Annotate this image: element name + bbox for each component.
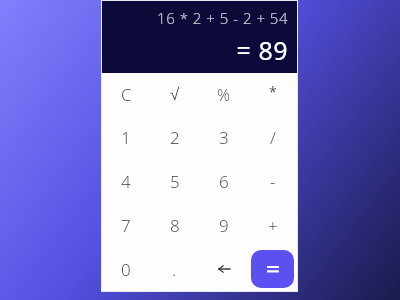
- button[interactable]: 5: [150, 159, 199, 203]
- staticText: /: [270, 126, 276, 149]
- staticText: √: [170, 85, 180, 104]
- staticText: 2: [170, 126, 180, 149]
- button[interactable]: 8: [150, 203, 199, 247]
- button[interactable]: √: [150, 73, 199, 116]
- staticText: .: [172, 258, 177, 281]
- button[interactable]: Equals: [251, 250, 294, 288]
- staticText: *: [269, 82, 277, 101]
- staticText: 8: [170, 214, 180, 237]
- staticText: 16 * 2 + 5 - 2 + 54: [111, 8, 288, 28]
- button[interactable]: 7: [102, 203, 150, 247]
- button[interactable]: /: [248, 116, 297, 159]
- button[interactable]: 9: [199, 203, 248, 247]
- staticText: 6: [219, 170, 229, 193]
- staticText: 5: [170, 170, 180, 193]
- button[interactable]: +: [248, 203, 297, 247]
- button[interactable]: Multiply: [248, 73, 297, 116]
- staticText: 9: [219, 214, 229, 237]
- staticText: %: [217, 84, 230, 106]
- button[interactable]: 2: [150, 116, 199, 159]
- staticText: 7: [121, 214, 131, 237]
- button[interactable]: %: [199, 73, 248, 116]
- button[interactable]: 1: [102, 116, 150, 159]
- button[interactable]: 6: [199, 159, 248, 203]
- staticText: 0: [121, 258, 131, 281]
- staticText: 4: [121, 170, 131, 193]
- staticText: C: [121, 83, 132, 106]
- staticText: 3: [219, 126, 229, 149]
- button[interactable]: -: [248, 159, 297, 203]
- staticText: = 89: [111, 33, 288, 67]
- button[interactable]: 3: [199, 116, 248, 159]
- staticText: +: [268, 214, 278, 237]
- button[interactable]: C: [102, 73, 150, 116]
- staticText: -: [270, 170, 276, 193]
- button[interactable]: 4: [102, 159, 150, 203]
- button[interactable]: 0: [102, 247, 150, 291]
- button[interactable]: .: [150, 247, 199, 291]
- button[interactable]: Backspace: [199, 247, 248, 291]
- staticText: 1: [121, 126, 131, 149]
